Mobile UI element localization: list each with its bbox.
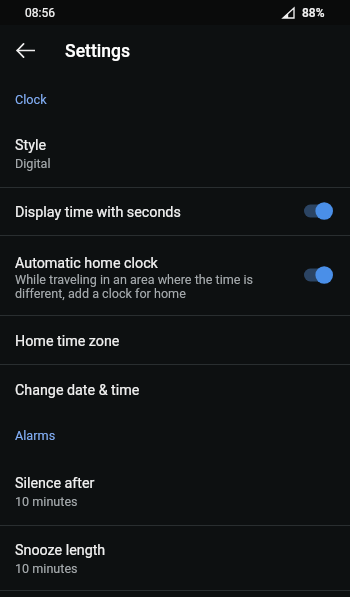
staticText: 88% <box>302 6 325 20</box>
staticText: Change date & time <box>15 382 140 399</box>
staticText: Clock <box>15 92 47 107</box>
staticText: Home time zone <box>15 333 120 350</box>
staticText: 08:56 <box>25 6 55 20</box>
staticText: 10 minutes <box>15 561 78 576</box>
staticText: Alarms <box>15 428 56 443</box>
staticText: Silence after <box>15 475 95 492</box>
staticText: Snooze length <box>15 542 106 559</box>
button[interactable]: Automatic home clock <box>0 236 350 315</box>
staticText: While traveling in an area where the tim… <box>15 272 294 301</box>
staticText: Style <box>15 137 46 154</box>
staticText: Display time with seconds <box>15 204 181 221</box>
button[interactable]: Silence after <box>0 458 350 525</box>
button[interactable]: Display time with seconds <box>0 188 350 235</box>
button[interactable]: Home time zone <box>0 316 350 364</box>
button[interactable]: Snooze length <box>0 526 350 590</box>
button[interactable]: Style <box>0 120 350 187</box>
button[interactable]: Back <box>5 30 45 70</box>
staticText: Automatic home clock <box>15 255 158 272</box>
staticText: Settings <box>65 41 131 62</box>
staticText: 10 minutes <box>15 494 78 509</box>
button[interactable]: Change date & time <box>0 365 350 414</box>
staticText: Digital <box>15 156 51 171</box>
